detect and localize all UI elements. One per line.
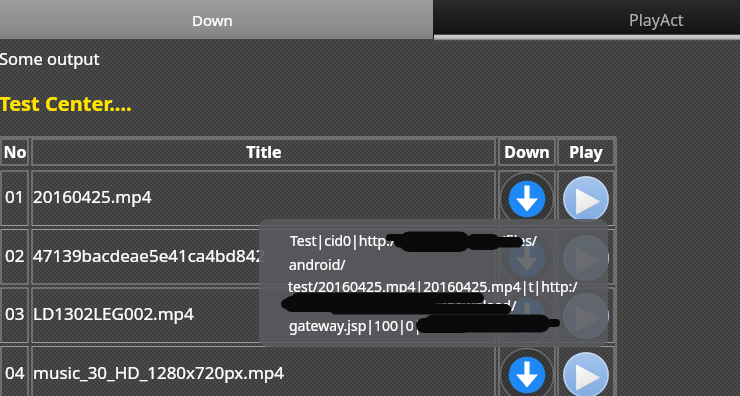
staticText: 20160425.mp4: [33, 185, 152, 208]
button[interactable]: Download: [499, 347, 555, 396]
staticText: Test|cid0|http://: [290, 231, 401, 250]
staticText: PlayAct: [629, 9, 684, 31]
button[interactable]: No: [1, 139, 28, 165]
button[interactable]: Play: [558, 139, 614, 165]
button[interactable]: 04: [1, 347, 28, 396]
staticText: 47139bacdeae5e41ca4bd842: [33, 244, 266, 267]
button[interactable]: Play: [558, 230, 614, 285]
staticText: Title: [246, 141, 282, 163]
button[interactable]: 03: [1, 288, 28, 343]
button[interactable]: Download: [499, 171, 555, 226]
button[interactable]: Download: [499, 230, 555, 285]
button[interactable]: PlayAct: [433, 0, 740, 39]
button[interactable]: 02: [1, 230, 28, 285]
button[interactable]: LD1302LEG002.mp4: [32, 288, 495, 343]
button[interactable]: Play: [558, 288, 614, 343]
button[interactable]: music_30_HD_1280x720px.mp4: [32, 347, 495, 396]
staticText: test/20160425.mp4|20160425.mp4|t|http:/: [288, 277, 578, 296]
staticText: Test Center....: [0, 90, 132, 117]
staticText: gateway.jsp|100|0|7;: [289, 316, 434, 335]
button[interactable]: 47139bacdeae5e41ca4bd842: [32, 230, 495, 285]
staticText: android/: [289, 255, 346, 274]
button[interactable]: 01: [1, 171, 28, 226]
button[interactable]: Play: [558, 347, 614, 396]
staticText: 01: [5, 185, 25, 208]
staticText: /files/: [500, 231, 538, 250]
staticText: 03: [5, 302, 25, 325]
staticText: LD1302LEG002.mp4: [33, 302, 194, 325]
staticText: 02: [5, 244, 25, 267]
staticText: Play: [569, 141, 603, 163]
staticText: /download/: [441, 296, 517, 315]
staticText: Down: [504, 141, 550, 163]
button[interactable]: 20160425.mp4: [32, 171, 495, 226]
staticText: 04: [5, 361, 25, 384]
button[interactable]: Title: [32, 139, 495, 165]
button[interactable]: Down: [499, 139, 555, 165]
staticText: No: [3, 141, 27, 163]
staticText: Down: [192, 10, 233, 30]
button[interactable]: Download: [499, 288, 555, 343]
staticText: music_30_HD_1280x720px.mp4: [33, 361, 284, 384]
staticText: Some output: [0, 47, 100, 69]
button[interactable]: Play: [558, 171, 614, 226]
button[interactable]: Down: [0, 0, 433, 39]
